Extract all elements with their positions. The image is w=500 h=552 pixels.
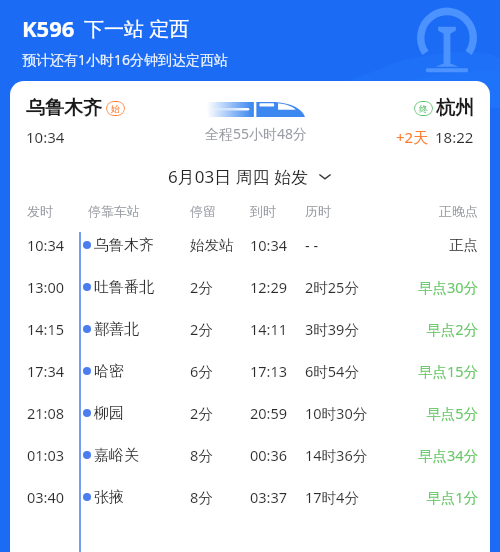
- staticText: 2分: [190, 319, 250, 339]
- staticText: 早点34分: [417, 445, 478, 465]
- staticText: 14:15: [27, 319, 80, 339]
- staticText: 终: [419, 103, 428, 114]
- staticText: 张掖: [94, 488, 190, 507]
- staticText: 18:22: [435, 127, 474, 147]
- staticText: 始: [111, 103, 120, 114]
- staticText: 停留: [190, 203, 250, 219]
- staticText: 哈密: [94, 362, 190, 381]
- staticText: 早点5分: [426, 403, 478, 423]
- staticText: 21:08: [27, 403, 80, 423]
- staticText: 始发站: [190, 236, 250, 254]
- staticText: 8分: [190, 445, 250, 465]
- staticText: 17时4分: [305, 487, 426, 507]
- staticText: 8分: [190, 487, 250, 507]
- staticText: 2分: [190, 403, 250, 423]
- staticText: 10:34: [27, 235, 80, 255]
- button[interactable]: 14:15: [10, 308, 490, 350]
- staticText: 柳园: [94, 404, 190, 423]
- staticText: 正晚点: [439, 203, 478, 219]
- staticText: 早点2分: [426, 319, 478, 339]
- staticText: 杭州: [436, 96, 474, 120]
- staticText: 停靠车站: [88, 203, 190, 219]
- staticText: 01:03: [27, 445, 80, 465]
- staticText: 17:34: [27, 361, 80, 381]
- staticText: 预计还有1小时16分钟到达定西站: [22, 50, 229, 69]
- staticText: 10:34: [26, 127, 65, 147]
- staticText: 早点15分: [417, 361, 478, 381]
- button[interactable]: 6月03日 周四 始发: [158, 162, 342, 191]
- staticText: 12:29: [250, 277, 305, 297]
- staticText: - -: [305, 235, 449, 255]
- staticText: 鄯善北: [94, 320, 190, 339]
- staticText: 00:36: [250, 445, 305, 465]
- staticText: 嘉峪关: [94, 446, 190, 465]
- staticText: 早点1分: [426, 487, 478, 507]
- button[interactable]: 10:34: [10, 224, 490, 266]
- staticText: 吐鲁番北: [94, 278, 190, 297]
- staticText: 3时39分: [305, 319, 426, 339]
- staticText: 2分: [190, 277, 250, 297]
- staticText: 2时25分: [305, 277, 417, 297]
- staticText: 03:40: [27, 487, 80, 507]
- staticText: 6分: [190, 361, 250, 381]
- button[interactable]: 17:34: [10, 350, 490, 392]
- staticText: 6时54分: [305, 361, 417, 381]
- staticText: 03:37: [250, 487, 305, 507]
- staticText: 正点: [449, 236, 478, 254]
- staticText: 10时30分: [305, 403, 426, 423]
- staticText: 全程55小时48分: [205, 124, 308, 143]
- staticText: 乌鲁木齐: [94, 236, 190, 255]
- staticText: 历时: [305, 203, 439, 219]
- staticText: 早点30分: [417, 277, 478, 297]
- staticText: 17:13: [250, 361, 305, 381]
- button[interactable]: 13:00: [10, 266, 490, 308]
- staticText: 下一站 定西: [84, 15, 190, 42]
- staticText: 乌鲁木齐: [26, 96, 102, 120]
- staticText: 6月03日 周四 始发: [168, 165, 309, 188]
- staticText: 发时: [27, 203, 88, 219]
- staticText: +2天: [396, 127, 429, 147]
- staticText: 14时36分: [305, 445, 417, 465]
- button[interactable]: 01:03: [10, 434, 490, 476]
- staticText: 到时: [250, 203, 305, 219]
- button[interactable]: 03:40: [10, 476, 490, 518]
- staticText: 13:00: [27, 277, 80, 297]
- button[interactable]: 21:08: [10, 392, 490, 434]
- staticText: 20:59: [250, 403, 305, 423]
- staticText: K596: [22, 13, 75, 43]
- staticText: 14:11: [250, 319, 305, 339]
- staticText: 10:34: [250, 235, 305, 255]
